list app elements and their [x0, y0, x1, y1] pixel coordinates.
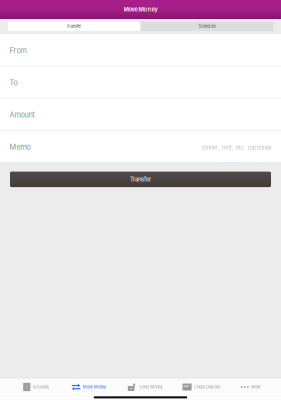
staticText: Send Money	[139, 384, 162, 389]
staticText: Accounts	[33, 384, 49, 389]
staticText: From	[9, 46, 26, 55]
button[interactable]: Transfer	[7, 21, 140, 31]
staticText: Memo	[9, 143, 30, 151]
button[interactable]: To	[0, 66, 281, 98]
staticText: Amount	[9, 110, 34, 119]
button[interactable]: Schedule	[140, 21, 273, 31]
staticText: More	[251, 384, 260, 389]
button[interactable]: Move Money	[61, 378, 116, 395]
button[interactable]: Check Deposit	[173, 378, 229, 395]
button[interactable]: From	[0, 34, 281, 66]
staticText: Move Money	[83, 384, 106, 389]
staticText: Move Money	[123, 6, 157, 13]
button[interactable]: Send Money	[116, 378, 173, 395]
staticText: Schedule	[198, 24, 215, 29]
button[interactable]: Memo	[0, 130, 281, 162]
button[interactable]: Amount	[0, 98, 281, 130]
button[interactable]: Transfer	[0, 163, 281, 187]
staticText: Check Deposit	[194, 384, 220, 389]
staticText: Transfer	[66, 24, 81, 29]
staticText: To	[9, 78, 17, 87]
staticText: Transfer	[130, 176, 151, 183]
staticText: dinner, rent, etc. (optional)	[201, 144, 271, 151]
button[interactable]: More	[229, 378, 272, 395]
button[interactable]: Accounts	[11, 378, 61, 395]
